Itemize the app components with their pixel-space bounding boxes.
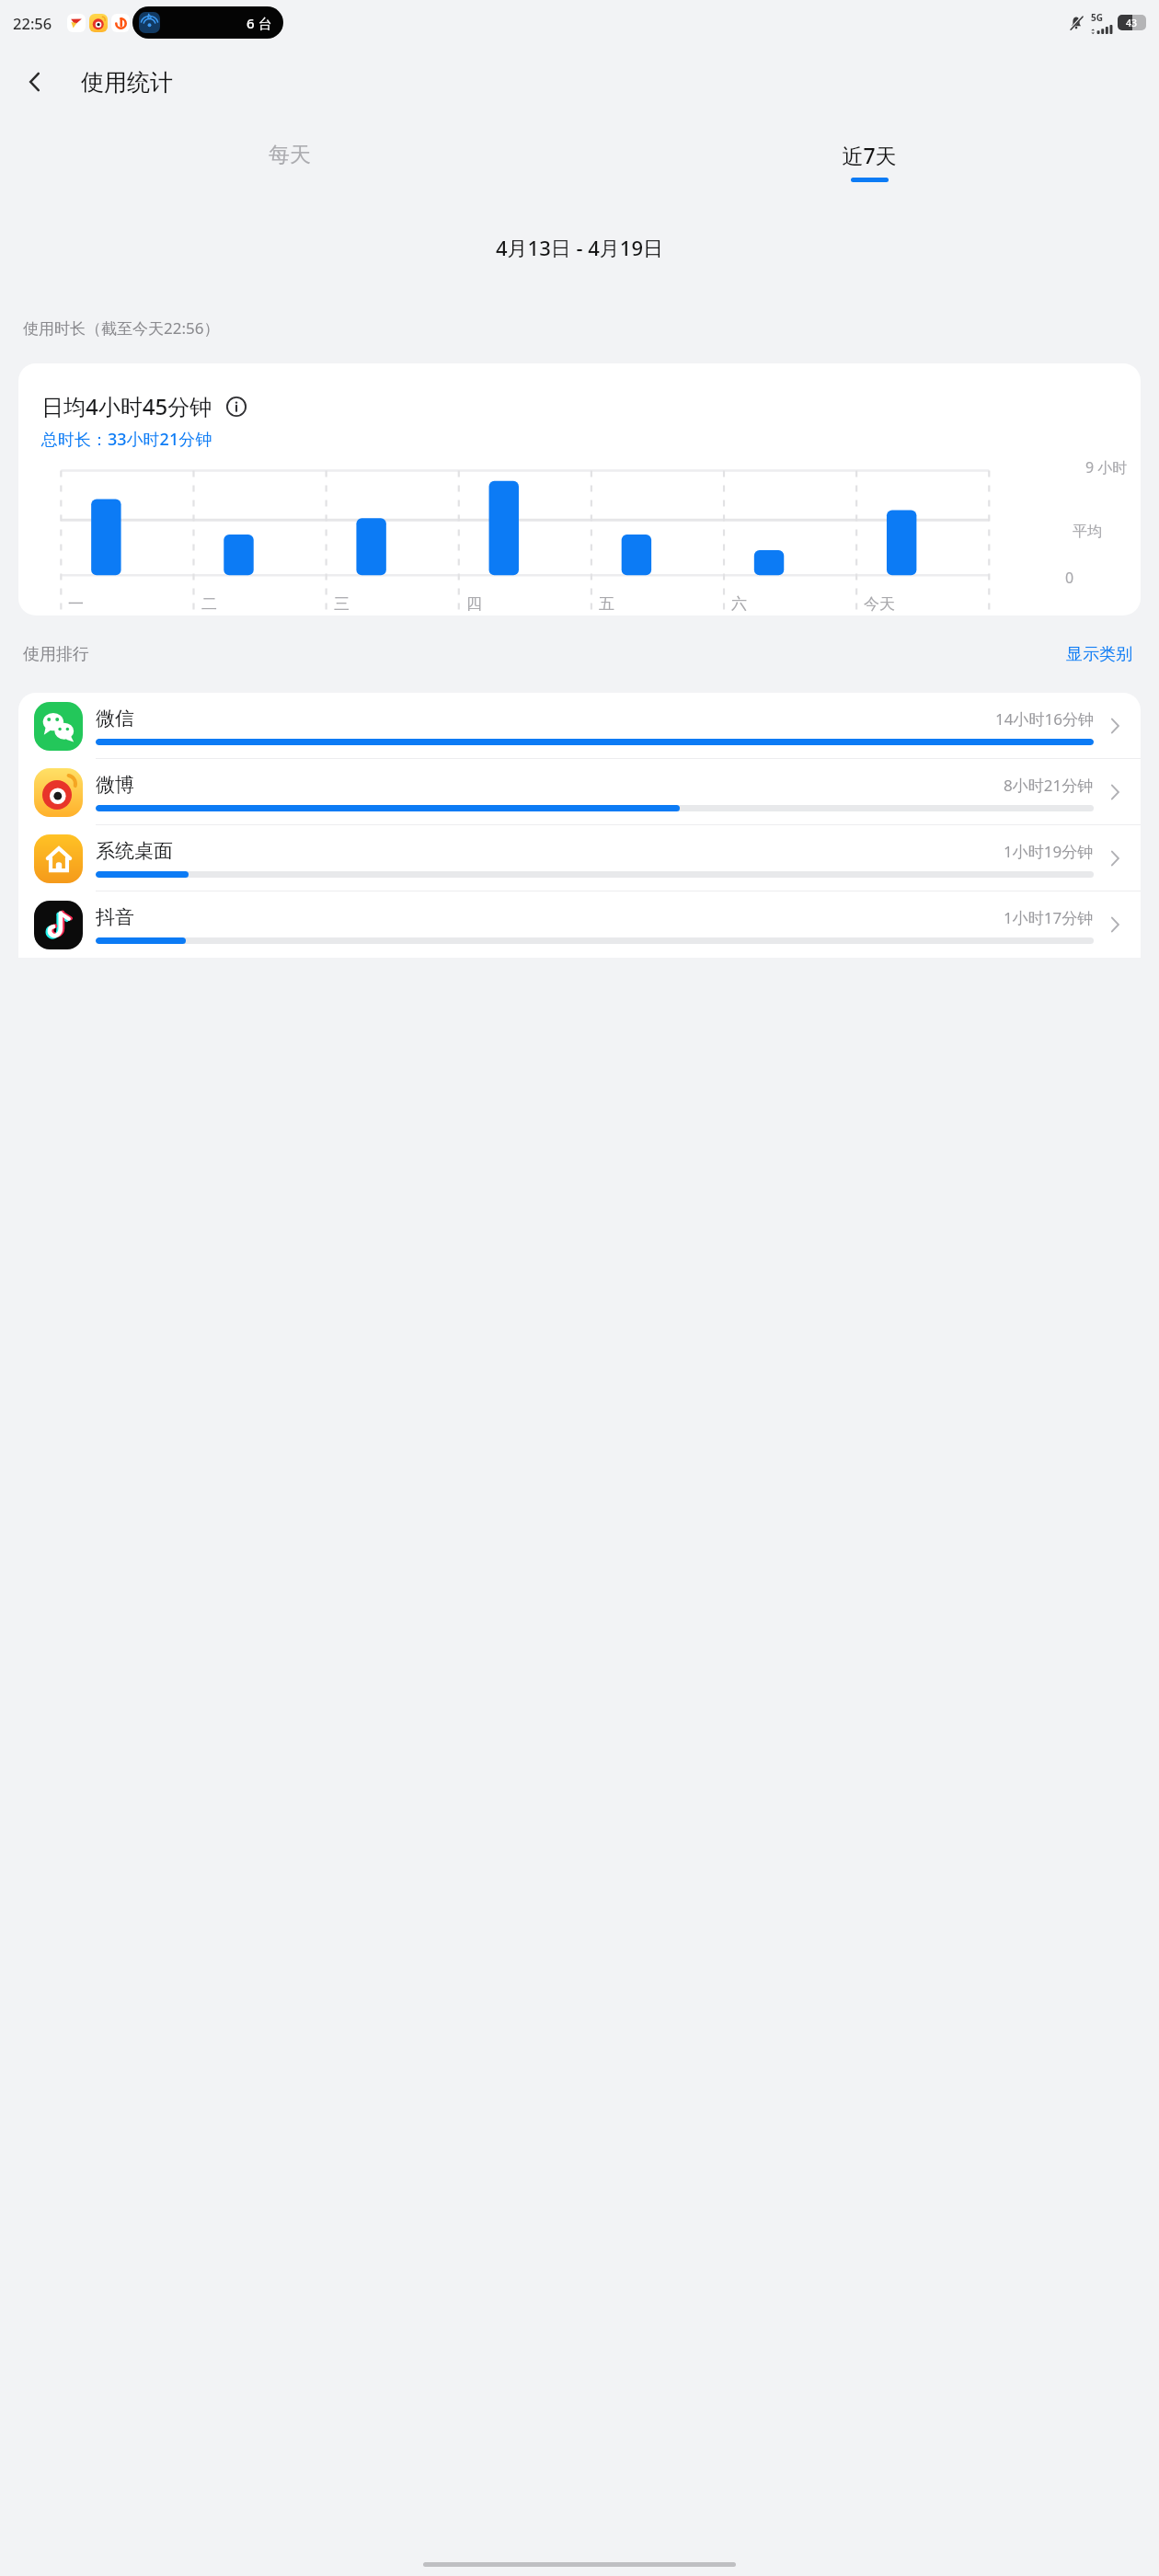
staticText: 日均4小时45分钟 <box>41 391 212 421</box>
button[interactable]: 微信 <box>18 693 1141 759</box>
button[interactable]: 返回 <box>11 58 59 106</box>
staticText: 14小时16分钟 <box>995 708 1094 730</box>
staticText: 使用排行 <box>23 644 89 665</box>
staticText: 平均 <box>1073 523 1102 541</box>
staticText: 抖音 <box>96 905 134 929</box>
button[interactable]: 说明 <box>223 393 250 420</box>
staticText: 1小时17分钟 <box>1004 907 1094 928</box>
staticText: 9 小时 <box>1085 457 1128 477</box>
staticText: 43 <box>1126 17 1138 29</box>
button[interactable]: 日均4小时45分钟 <box>18 363 1141 615</box>
staticText: 0 <box>1065 568 1074 588</box>
staticText: 近7天 <box>842 141 897 169</box>
staticText: 四 <box>466 594 482 614</box>
staticText: 22:56 <box>13 13 52 33</box>
button[interactable]: 显示类别 <box>1062 640 1136 669</box>
staticText: 系统桌面 <box>96 839 173 863</box>
staticText: 一 <box>68 594 84 614</box>
staticText: 8小时21分钟 <box>1004 775 1094 796</box>
staticText: 每天 <box>269 142 311 168</box>
staticText: 三 <box>334 594 350 614</box>
staticText: 1小时19分钟 <box>1004 841 1094 862</box>
staticText: 使用统计 <box>81 68 173 97</box>
button[interactable]: 抖音 <box>18 891 1141 958</box>
button[interactable]: 每天 <box>0 119 579 203</box>
staticText: 使用时长（截至今天22:56） <box>23 317 220 339</box>
staticText: 4月13日 - 4月19日 <box>496 234 664 261</box>
staticText: 今天 <box>864 594 895 614</box>
staticText: 5G <box>1091 11 1103 24</box>
button[interactable]: 系统桌面 <box>18 825 1141 891</box>
staticText: 总时长：33小时21分钟 <box>41 428 212 451</box>
staticText: 微博 <box>96 773 134 797</box>
staticText: 六 <box>731 594 747 614</box>
staticText: 微信 <box>96 707 134 730</box>
staticText: 二 <box>201 594 217 614</box>
button[interactable]: 微博 <box>18 759 1141 825</box>
staticText: 五 <box>599 594 614 614</box>
staticText: 6 台 <box>247 14 272 32</box>
button[interactable]: 近7天 <box>579 119 1159 203</box>
staticText: 显示类别 <box>1066 644 1132 665</box>
